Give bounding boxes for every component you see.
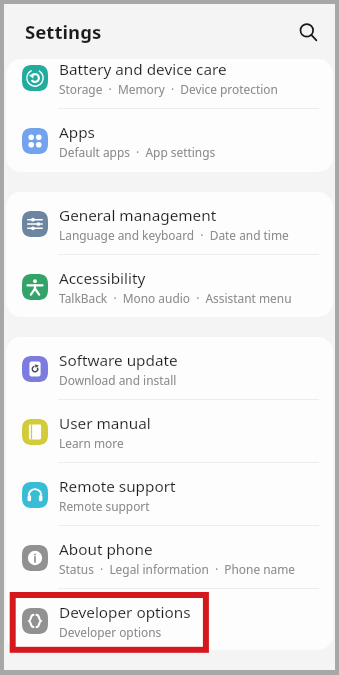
- staticText: Language and keyboard · Date and time: [59, 227, 289, 243]
- staticText: Developer options: [59, 624, 162, 640]
- staticText: About phone: [59, 539, 153, 560]
- staticText: Default apps · App settings: [59, 144, 216, 160]
- button[interactable]: Battery and device care: [6, 59, 333, 109]
- button[interactable]: Apps: [6, 109, 333, 172]
- staticText: User manual: [59, 413, 151, 434]
- staticText: Battery and device care: [59, 59, 227, 80]
- staticText: TalkBack · Mono audio · Assistant menu: [59, 290, 292, 306]
- staticText: Download and install: [59, 372, 177, 388]
- staticText: Learn more: [59, 435, 124, 451]
- button[interactable]: About phone: [6, 526, 333, 589]
- staticText: Settings: [25, 19, 102, 44]
- staticText: Storage · Memory · Device protection: [59, 81, 278, 97]
- button[interactable]: General management: [6, 192, 333, 255]
- staticText: Apps: [59, 122, 95, 143]
- button[interactable]: User manual: [6, 400, 333, 463]
- button[interactable]: Accessibility: [6, 255, 333, 317]
- button[interactable]: Search: [291, 15, 325, 49]
- button[interactable]: Software update: [6, 337, 333, 400]
- button[interactable]: Developer options: [6, 589, 333, 650]
- staticText: Status · Legal information · Phone name: [59, 561, 296, 577]
- button[interactable]: Remote support: [6, 463, 333, 526]
- staticText: Remote support: [59, 476, 176, 497]
- staticText: Software update: [59, 350, 178, 371]
- staticText: Remote support: [59, 498, 150, 514]
- staticText: General management: [59, 205, 217, 226]
- staticText: Accessibility: [59, 268, 146, 289]
- staticText: Developer options: [59, 602, 191, 623]
